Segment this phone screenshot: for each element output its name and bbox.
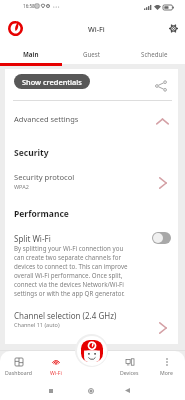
button[interactable]: Channel selection (2.4 GHz) [5, 307, 178, 335]
staticText: WPA2 [14, 183, 29, 190]
staticText: Advanced settings [14, 114, 79, 124]
staticText: Channel selection (2.4 GHz) [14, 310, 117, 321]
staticText: By splitting your Wi-Fi connection you c… [14, 244, 131, 298]
button[interactable]: Split Wi-Fi toggle [152, 232, 171, 244]
button[interactable]: Guest [61, 44, 123, 63]
button[interactable]: Settings [164, 19, 182, 37]
button[interactable]: Security protocol [5, 166, 178, 194]
staticText: Wi-Fi [88, 24, 105, 34]
button[interactable]: Schedule [123, 44, 185, 63]
button[interactable]: Back [121, 384, 134, 397]
staticText: More [160, 369, 173, 376]
staticText: Performance [14, 208, 69, 220]
button[interactable]: Advanced settings [5, 105, 178, 127]
staticText: Security [14, 147, 49, 159]
button[interactable]: Main [0, 44, 61, 63]
button[interactable]: Dashboard [0, 355, 37, 379]
staticText: Wi-Fi [50, 369, 62, 376]
staticText: 16:58 [23, 3, 35, 9]
button[interactable]: Show credentials [14, 74, 90, 89]
button[interactable]: Wi-Fi [37, 355, 74, 379]
button[interactable]: Recents [44, 384, 57, 397]
staticText: Dashboard [5, 369, 32, 376]
staticText: Channel 11 (auto) [14, 321, 60, 328]
staticText: Show credentials [22, 77, 82, 87]
staticText: Devices [120, 369, 139, 376]
button[interactable]: Vodafone home [6, 19, 25, 38]
staticText: Security protocol [14, 172, 75, 182]
staticText: Split Wi-Fi [14, 233, 51, 244]
button[interactable]: TOBi assistant [75, 334, 108, 367]
button[interactable]: Home [84, 384, 97, 397]
button[interactable]: Split Wi-Fi [5, 229, 178, 247]
button[interactable]: Devices [111, 355, 148, 379]
staticText: Guest [83, 50, 101, 58]
button[interactable]: More [148, 355, 185, 379]
button[interactable]: Share [150, 75, 171, 96]
staticText: Schedule [141, 50, 168, 58]
staticText: Main [23, 50, 39, 58]
